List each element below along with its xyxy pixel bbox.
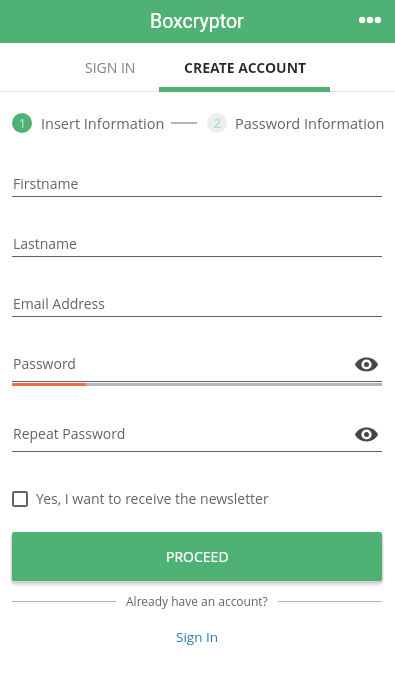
staticText: Email Address [13, 294, 105, 313]
staticText: PROCEED [166, 547, 229, 566]
button[interactable]: Show password [350, 348, 382, 380]
staticText: Already have an account? [126, 593, 268, 609]
staticText: Repeat Password [13, 424, 126, 443]
staticText: SIGN IN [85, 58, 136, 77]
staticText: CREATE ACCOUNT [184, 58, 307, 77]
staticText: 2 [214, 115, 221, 131]
button[interactable]: SIGN IN [46, 43, 174, 92]
staticText: Lastname [13, 234, 77, 253]
staticText: Boxcryptor [150, 10, 244, 33]
button[interactable]: More options [347, 0, 392, 40]
button[interactable]: Sign In [162, 621, 233, 653]
button[interactable]: Yes, I want to receive the newsletter [0, 484, 395, 513]
staticText: Sign In [176, 628, 219, 646]
button[interactable]: CREATE ACCOUNT [183, 43, 308, 92]
staticText: Insert Information [41, 114, 165, 134]
button[interactable]: Show password [350, 418, 382, 450]
staticText: Password [13, 354, 76, 373]
staticText: Firstname [13, 174, 79, 193]
staticText: 1 [19, 115, 26, 131]
staticText: Password Information [235, 114, 385, 134]
staticText: Yes, I want to receive the newsletter [36, 489, 269, 508]
button[interactable]: PROCEED [12, 532, 382, 581]
